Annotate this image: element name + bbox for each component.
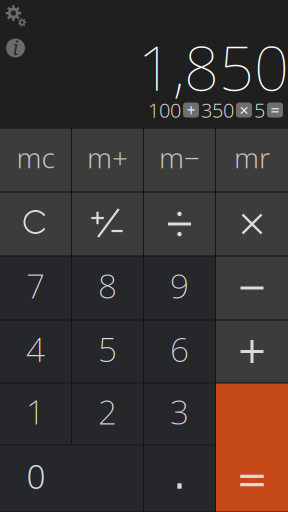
staticText: 350 <box>201 97 234 123</box>
button[interactable]: Memory clear <box>0 128 71 191</box>
button[interactable]: Settings <box>0 0 32 32</box>
button[interactable]: Equals <box>216 383 288 511</box>
staticText: 0 <box>26 454 45 498</box>
button[interactable]: Multiply <box>216 192 288 255</box>
staticText: i <box>12 34 18 61</box>
button[interactable]: Clear <box>0 192 71 255</box>
staticText: m+ <box>87 139 128 176</box>
button[interactable]: Info <box>0 32 31 64</box>
staticText: 8 <box>98 263 117 308</box>
button[interactable]: Plus <box>216 320 288 382</box>
staticText: mc <box>16 139 54 176</box>
staticText: 100 <box>148 97 181 123</box>
button[interactable]: 9 <box>144 256 215 319</box>
staticText: = <box>270 99 279 121</box>
staticText: 5 <box>98 327 117 371</box>
button[interactable]: 4 <box>0 320 71 382</box>
button[interactable]: 8 <box>72 256 143 319</box>
button[interactable]: 5 <box>72 320 143 382</box>
staticText: 7 <box>26 263 45 308</box>
staticText: + <box>186 99 195 121</box>
button[interactable]: Memory add <box>72 128 143 191</box>
button[interactable]: Memory recall <box>216 128 288 191</box>
staticText: 1 <box>26 389 45 434</box>
button[interactable]: 1 <box>0 383 71 444</box>
button[interactable]: Divide <box>144 192 215 255</box>
staticText: 6 <box>170 327 189 371</box>
button[interactable]: Decimal point <box>144 445 215 511</box>
staticText: × <box>239 99 248 121</box>
button[interactable]: Zero <box>0 445 143 511</box>
button[interactable]: 2 <box>72 383 143 444</box>
button[interactable]: 6 <box>144 320 215 382</box>
staticText: 9 <box>170 263 189 308</box>
staticText: 5 <box>254 97 265 123</box>
button[interactable]: 3 <box>144 383 215 444</box>
button[interactable]: Memory subtract <box>144 128 215 191</box>
staticText: 3 <box>170 389 189 434</box>
staticText: 4 <box>26 327 45 371</box>
staticText: m− <box>159 139 200 176</box>
staticText: mr <box>234 139 270 176</box>
button[interactable]: Plus minus <box>72 192 143 255</box>
button[interactable]: 7 <box>0 256 71 319</box>
button[interactable]: Minus <box>216 256 288 319</box>
staticText: 1,850 <box>138 26 288 108</box>
staticText: 2 <box>98 389 117 434</box>
